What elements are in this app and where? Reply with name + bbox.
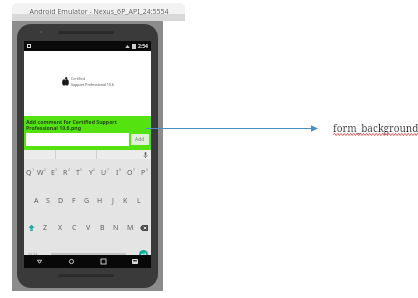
staticText: . [130, 251, 132, 259]
button[interactable]: Recents [87, 255, 119, 268]
button[interactable]: . [126, 241, 135, 268]
staticText: 5 [80, 167, 83, 172]
staticText: C [72, 223, 77, 233]
staticText: T [76, 168, 80, 178]
staticText: P [141, 168, 146, 178]
button[interactable]: R [60, 159, 73, 187]
button[interactable]: N [109, 214, 123, 241]
staticText: D [58, 196, 64, 206]
staticText: A [34, 196, 39, 206]
button[interactable]: W [36, 159, 48, 187]
staticText: M [127, 223, 134, 233]
button[interactable]: Add comment for Certified Support Profes… [24, 116, 151, 150]
staticText: Q [26, 168, 32, 178]
staticText: , [46, 251, 48, 259]
staticText: Add comment for Certified Support Profes… [26, 118, 149, 131]
button[interactable]: Home [55, 255, 87, 268]
button[interactable]: X [53, 214, 67, 241]
button[interactable]: G [80, 187, 93, 214]
button[interactable]: F [67, 187, 80, 214]
button[interactable]: V [81, 214, 95, 241]
staticText: 2 [44, 167, 47, 172]
staticText: O [127, 168, 133, 178]
button[interactable]: ?123 [24, 241, 42, 268]
staticText: F [72, 196, 76, 206]
staticText: R [63, 168, 68, 178]
button[interactable]: K [119, 187, 132, 214]
button[interactable]: O [125, 159, 138, 187]
staticText: Support Professional 10.6 [71, 82, 114, 87]
button[interactable]: U [99, 159, 112, 187]
staticText: B [100, 223, 105, 233]
staticText: 3 [55, 167, 58, 172]
staticText: U [101, 168, 107, 178]
button[interactable]: Shift [24, 214, 38, 241]
staticText: Add [135, 136, 145, 143]
other: Voice input [144, 152, 147, 158]
button[interactable]: C [67, 214, 81, 241]
button[interactable]: Backspace [137, 214, 151, 241]
staticText: 2:54 [138, 43, 148, 50]
button[interactable]: D [54, 187, 67, 214]
staticText: H [97, 196, 103, 206]
button[interactable]: E [48, 159, 60, 187]
button[interactable]: Z [38, 214, 53, 241]
staticText: G [84, 196, 90, 206]
button[interactable]: M [123, 214, 137, 241]
staticText: I [116, 168, 119, 178]
staticText: S [46, 196, 50, 206]
button[interactable]: L [132, 187, 145, 214]
button[interactable]: Space [51, 244, 126, 265]
staticText: Certified [71, 76, 86, 81]
staticText: K [123, 196, 128, 206]
button[interactable]: Q [24, 159, 36, 187]
staticText: 1 [32, 167, 35, 172]
staticText: E [51, 168, 55, 178]
button[interactable]: Y [86, 159, 99, 187]
staticText: 9 [133, 167, 136, 172]
button[interactable]: H [93, 187, 106, 214]
staticText: L [137, 196, 141, 206]
button[interactable]: A [30, 187, 42, 214]
staticText: 8 [119, 167, 122, 172]
button[interactable]: S [42, 187, 54, 214]
staticText: X [58, 223, 63, 233]
button[interactable]: Back [24, 255, 55, 268]
staticText: ?123 [28, 252, 38, 258]
button[interactable]: Hide keyboard [119, 255, 151, 268]
button[interactable]: , [42, 241, 51, 268]
button[interactable]: I [112, 159, 125, 187]
staticText: V [86, 223, 91, 233]
staticText: Y [89, 168, 93, 178]
staticText: Android Emulator - Nexus_6P_API_24:5554 [29, 7, 169, 17]
staticText: N [113, 223, 119, 233]
button[interactable]: B [95, 214, 109, 241]
staticText: W [37, 168, 44, 178]
staticText: 7 [107, 167, 110, 172]
button[interactable]: Add [131, 134, 149, 145]
staticText: form_background [333, 121, 418, 135]
button[interactable]: P [138, 159, 151, 187]
staticText: J [112, 196, 114, 206]
staticText: 4 [68, 167, 71, 172]
staticText: 6 [93, 167, 96, 172]
button[interactable]: J [106, 187, 119, 214]
button[interactable]: Enter [135, 241, 151, 268]
staticText: Z [43, 223, 48, 233]
staticText: 0 [146, 167, 149, 172]
button[interactable]: T [73, 159, 86, 187]
